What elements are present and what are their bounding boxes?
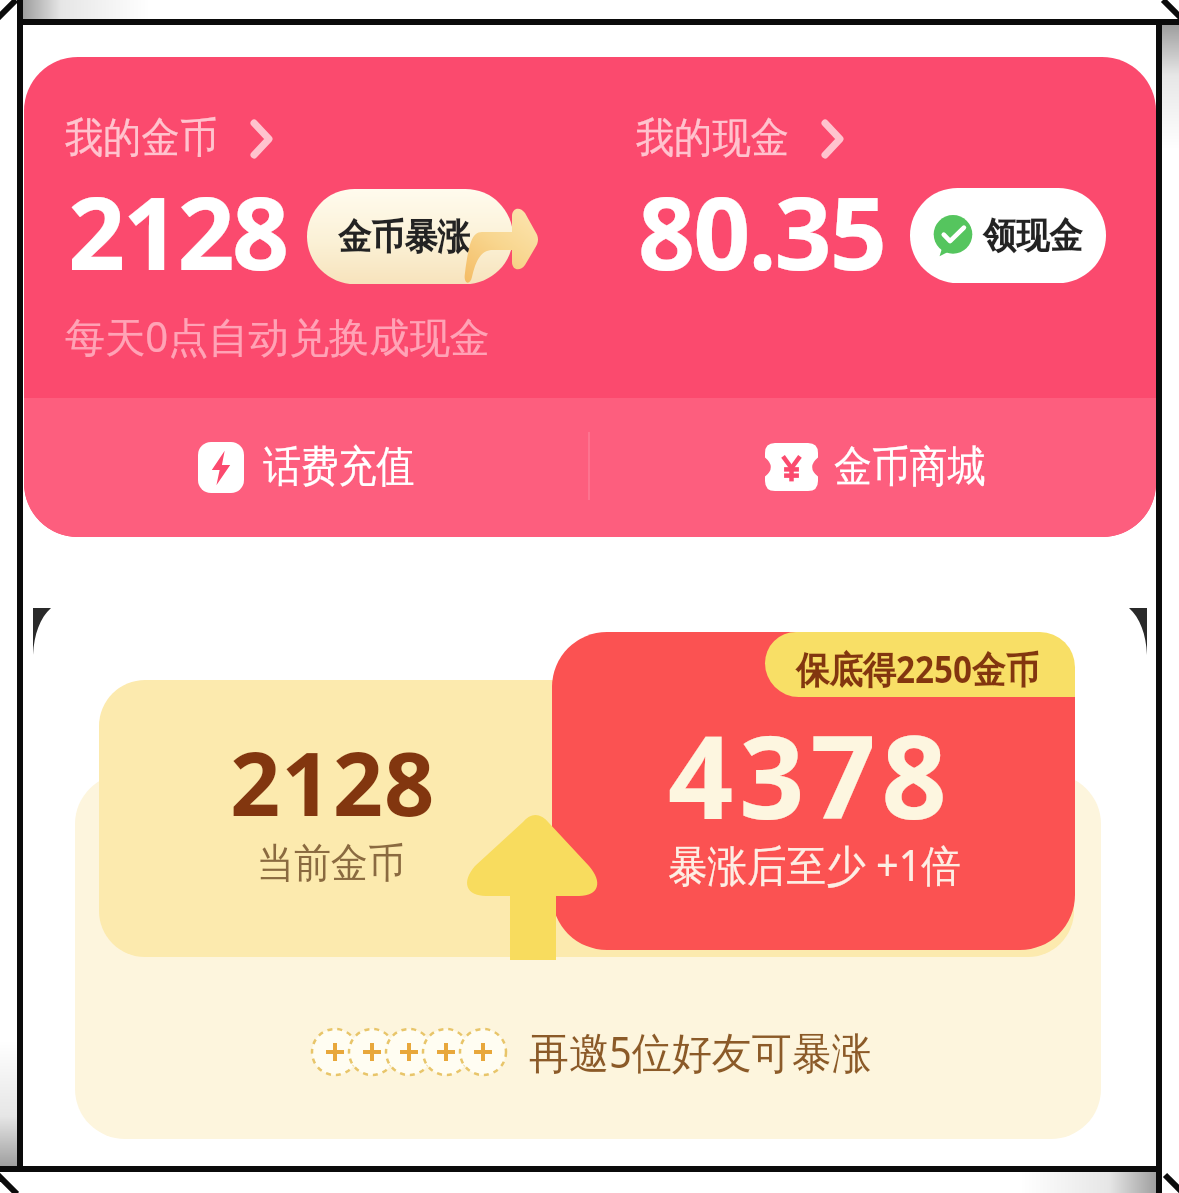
staticText: 暴涨后至少 +1倍 — [668, 835, 961, 894]
button[interactable]: 我的现金 — [636, 112, 844, 165]
staticText: 领现金 — [983, 213, 1082, 258]
button[interactable]: 金币暴涨 — [307, 189, 513, 284]
staticText: 2128 — [230, 722, 436, 842]
staticText: 当前金币 — [257, 838, 405, 890]
other: 话费充值 — [198, 442, 244, 493]
button[interactable]: 金币商城 — [765, 440, 1006, 494]
staticText: 话费充值 — [263, 440, 414, 494]
staticText: 我的金币 — [65, 112, 218, 165]
other: WeChat — [932, 215, 974, 257]
button[interactable]: 再邀5位好友可暴涨 — [312, 1022, 898, 1081]
button[interactable]: 我的金币 — [65, 112, 273, 165]
staticText: 每天0点自动兑换成现金 — [65, 308, 490, 364]
staticText: 再邀5位好友可暴涨 — [529, 1022, 872, 1081]
staticText: 2128 — [68, 163, 287, 299]
button[interactable]: WeChat — [910, 188, 1106, 283]
button[interactable]: 话费充值 — [198, 440, 435, 494]
staticText: 80.35 — [638, 163, 885, 299]
other: 金币商城 — [765, 443, 818, 491]
staticText: 我的现金 — [636, 112, 789, 165]
staticText: 4378 — [668, 697, 953, 852]
staticText: 金币商城 — [834, 440, 985, 494]
staticText: 保底得2250金币 — [796, 643, 1039, 694]
staticText: 金币暴涨 — [338, 214, 470, 259]
